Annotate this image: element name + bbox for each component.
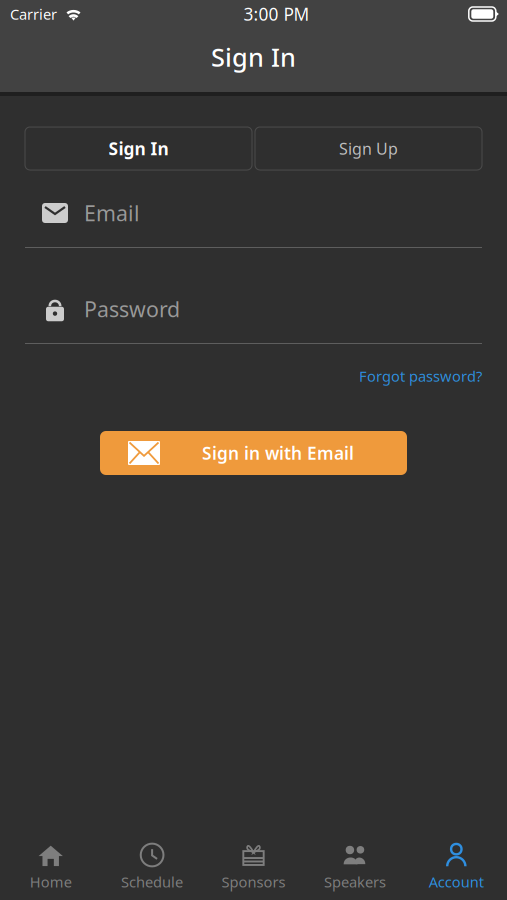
button[interactable]: Speakers	[304, 828, 406, 900]
button[interactable]: Sign In	[25, 127, 252, 170]
staticText: Carrier	[10, 4, 57, 24]
button[interactable]: Sponsors	[203, 828, 304, 900]
staticText: Speakers	[324, 872, 386, 891]
staticText: Account	[429, 872, 484, 891]
staticText: Home	[30, 872, 72, 891]
staticText: Sign in with Email	[202, 441, 354, 464]
button[interactable]: Schedule	[101, 828, 203, 900]
staticText: Sign Up	[339, 138, 398, 159]
button[interactable]: Account	[406, 828, 507, 900]
staticText: 3:00 PM	[243, 2, 309, 25]
staticText: Sign In	[211, 40, 296, 74]
staticText: Sponsors	[221, 872, 285, 891]
staticText: Schedule	[121, 872, 183, 891]
staticText: Sign In	[108, 137, 168, 160]
button[interactable]: Home	[0, 828, 101, 900]
staticText: Forgot password?	[359, 366, 482, 386]
staticText: Password	[84, 295, 180, 323]
staticText: Email	[84, 199, 140, 227]
button[interactable]: Sign in with Email	[100, 431, 407, 475]
button[interactable]: Sign Up	[255, 127, 482, 170]
button[interactable]: Forgot password?	[359, 344, 482, 408]
